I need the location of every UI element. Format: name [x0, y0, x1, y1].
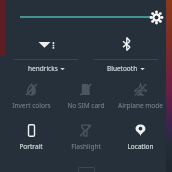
button[interactable]: Brightness — [0, 8, 172, 26]
staticText: Airplane mode — [118, 101, 163, 110]
staticText: Location — [127, 142, 154, 151]
button[interactable]: Portrait — [4, 124, 58, 151]
button[interactable]: Location — [113, 124, 168, 151]
button[interactable]: Bluetooth — [86, 32, 166, 73]
button[interactable]: No SIM card — [58, 83, 113, 110]
button[interactable]: Airplane mode — [113, 83, 168, 110]
staticText: No SIM card — [67, 101, 105, 110]
button[interactable]: Invert colors — [4, 83, 58, 110]
button[interactable]: hendricks — [6, 32, 86, 73]
staticText: hendricks — [28, 64, 58, 73]
staticText: Flashlight — [71, 142, 101, 151]
staticText: Bluetooth — [107, 64, 138, 73]
staticText: Portrait — [19, 142, 43, 151]
staticText: Invert colors — [12, 101, 51, 110]
button[interactable]: Flashlight — [58, 124, 113, 151]
